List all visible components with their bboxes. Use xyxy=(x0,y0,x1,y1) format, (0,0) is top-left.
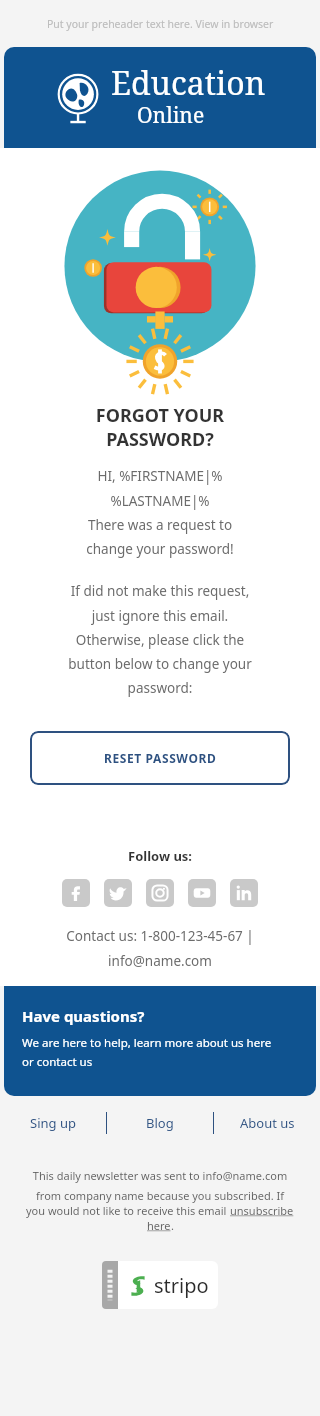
staticText: stripo xyxy=(154,1272,209,1299)
button[interactable]: Instagram xyxy=(146,879,174,907)
staticText: Sing up xyxy=(30,1114,76,1132)
staticText: Follow us: xyxy=(128,847,193,865)
button[interactable]: LinkedIn xyxy=(230,879,258,907)
staticText: RESET PASSWORD xyxy=(104,750,217,766)
staticText: Blog xyxy=(146,1114,174,1132)
button[interactable]: YouTube xyxy=(188,879,216,907)
button[interactable]: Blog xyxy=(107,1096,213,1150)
button[interactable]: About us xyxy=(214,1096,320,1150)
staticText: Put your preheader text here. View in br… xyxy=(47,17,274,31)
staticText: . xyxy=(171,1218,174,1233)
staticText: you would not like to receive this email xyxy=(26,1203,230,1218)
staticText: Education xyxy=(111,61,266,105)
staticText: FORGOT YOUR PASSWORD? xyxy=(0,403,320,451)
staticText: Online xyxy=(137,101,205,130)
staticText: Have quastions? xyxy=(22,1006,145,1026)
staticText: About us xyxy=(240,1114,295,1132)
button[interactable]: Twitter xyxy=(104,879,132,907)
staticText: If did not make this request, just ignor… xyxy=(0,582,320,697)
staticText: We are here to help, learn more about us… xyxy=(22,1035,272,1069)
button[interactable]: RESET PASSWORD xyxy=(30,731,290,785)
button[interactable]: unsubscribe xyxy=(230,1203,294,1218)
staticText: This daily newsletter was sent to info@n… xyxy=(14,1168,306,1203)
button[interactable]: here xyxy=(147,1218,171,1233)
button[interactable]: Facebook xyxy=(62,879,90,907)
staticText: Contact us: 1-800-123-45-67 | info@name.… xyxy=(0,927,320,970)
button[interactable]: Sing up xyxy=(0,1096,106,1150)
staticText: HI, %FIRSTNAME|% %LASTNAME|% There was a… xyxy=(0,467,320,558)
